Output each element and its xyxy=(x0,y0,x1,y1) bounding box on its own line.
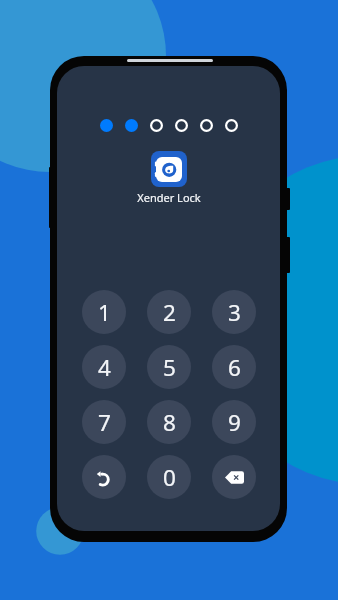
button[interactable]: Xender Lock xyxy=(151,151,187,187)
button[interactable]: 9 xyxy=(212,400,256,444)
staticText: 0 xyxy=(163,462,176,493)
button[interactable]: 1 xyxy=(82,290,126,334)
staticText: 9 xyxy=(228,407,241,438)
staticText: 8 xyxy=(163,407,176,438)
staticText: 4 xyxy=(98,352,111,383)
button[interactable]: 0 xyxy=(147,455,191,499)
staticText: 7 xyxy=(98,407,111,438)
other: Undo xyxy=(93,464,115,490)
button[interactable]: 6 xyxy=(212,345,256,389)
staticText: 6 xyxy=(228,352,241,383)
other: Backspace xyxy=(225,471,244,484)
button[interactable]: 3 xyxy=(212,290,256,334)
button[interactable]: 4 xyxy=(82,345,126,389)
staticText: 5 xyxy=(163,352,176,383)
button[interactable]: 7 xyxy=(82,400,126,444)
button[interactable]: 5 xyxy=(147,345,191,389)
button[interactable]: Undo xyxy=(82,455,126,499)
button[interactable]: 2 xyxy=(147,290,191,334)
staticText: 3 xyxy=(228,297,241,328)
staticText: Xender Lock xyxy=(137,190,201,205)
staticText: 2 xyxy=(163,297,176,328)
button[interactable]: Backspace xyxy=(212,455,256,499)
button[interactable]: 8 xyxy=(147,400,191,444)
staticText: 1 xyxy=(98,297,111,328)
